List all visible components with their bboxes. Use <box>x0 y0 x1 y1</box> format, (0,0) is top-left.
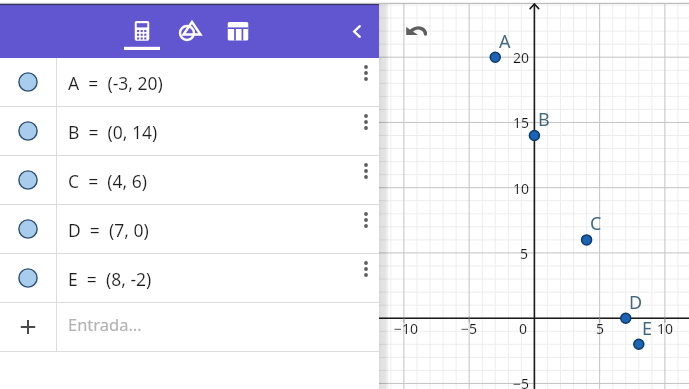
button[interactable]: Geometry <box>164 4 210 58</box>
staticText: 15 <box>513 113 530 132</box>
staticText: 10 <box>513 179 530 198</box>
staticText: A <box>499 29 511 54</box>
staticText: B = (0, 14) <box>68 120 158 144</box>
button[interactable]: Undo <box>398 12 434 48</box>
staticText: 0 <box>519 319 528 338</box>
staticText: A = (-3, 20) <box>68 71 163 95</box>
button[interactable]: More options <box>353 58 379 107</box>
staticText: C <box>590 211 602 236</box>
button[interactable]: Table <box>215 4 261 58</box>
button[interactable]: A = (-3, 20) <box>0 58 379 107</box>
staticText: C = (4, 6) <box>68 169 148 193</box>
staticText: B <box>538 107 550 132</box>
button[interactable]: D = (7, 0) <box>0 205 379 254</box>
button[interactable]: B = (0, 14) <box>0 107 379 156</box>
button[interactable]: Entrada… <box>0 303 379 352</box>
staticText: 5 <box>596 319 605 338</box>
button[interactable]: More options <box>353 156 379 205</box>
staticText: E <box>642 316 653 341</box>
staticText: 20 <box>513 48 530 67</box>
staticText: 5 <box>520 244 529 263</box>
staticText: D <box>629 290 643 315</box>
staticText: 10 <box>657 319 674 338</box>
button[interactable]: More options <box>353 205 379 254</box>
button[interactable]: C = (4, 6) <box>0 156 379 205</box>
staticText: D = (7, 0) <box>68 218 149 242</box>
staticText: −5 <box>513 374 530 389</box>
staticText: E = (8, -2) <box>68 267 152 291</box>
button[interactable]: More options <box>353 107 379 156</box>
button[interactable]: Calculator <box>119 4 165 58</box>
staticText: −5 <box>461 319 478 338</box>
staticText: −10 <box>394 319 419 338</box>
staticText: Entrada… <box>68 313 142 335</box>
button[interactable]: More options <box>353 254 379 303</box>
button[interactable]: E = (8, -2) <box>0 254 379 303</box>
button[interactable]: Collapse panel <box>335 4 379 58</box>
